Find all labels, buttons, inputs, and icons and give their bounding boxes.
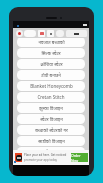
staticText: promote your app today [24, 158, 58, 162]
button[interactable]: नयाँ डिजाइन [17, 147, 85, 157]
staticText: टोपी बनाउने [41, 72, 61, 78]
button[interactable]: Order Now [71, 153, 88, 162]
staticText: नवजात बच्चाको [38, 39, 65, 45]
staticText: Blanket Honeycomb [30, 83, 73, 89]
button[interactable]: क्रोशिया स्वेटर [17, 59, 85, 69]
button[interactable]: टोपी बनाउने [17, 70, 85, 80]
button[interactable]: बच्चाको स्वेटरको गर [17, 125, 85, 135]
staticText: क्रोशिया स्वेटर [40, 61, 63, 67]
button[interactable]: झुम्का डिजाइन [17, 103, 85, 113]
button[interactable]: Advertisement [13, 150, 89, 165]
button[interactable]: सिल्क स्वेटर [17, 48, 85, 58]
staticText: Cretan Stitch [37, 94, 65, 100]
button[interactable]: साडीको डिजाइन [17, 136, 85, 146]
button[interactable]: नवजात बच्चाको [17, 37, 85, 47]
button[interactable]: स्वेटर डिजाइन [17, 114, 85, 124]
button[interactable]: Cretan Stitch [17, 92, 85, 102]
staticText: झुम्का डिजाइन [39, 105, 63, 111]
staticText: बच्चाको स्वेटरको गर [35, 127, 68, 133]
staticText: Order Now [71, 153, 88, 162]
staticText: स्वेटर डिजाइन [40, 116, 63, 122]
staticText: नयाँ डिजाइन [41, 149, 62, 155]
staticText: Place your ad here. Get noticed [24, 153, 67, 157]
button[interactable]: Advertisement [13, 28, 89, 38]
staticText: सिल्क स्वेटर [41, 50, 61, 56]
staticText: साडीको डिजाइन [38, 138, 65, 144]
button[interactable]: Blanket Honeycomb [17, 81, 85, 91]
